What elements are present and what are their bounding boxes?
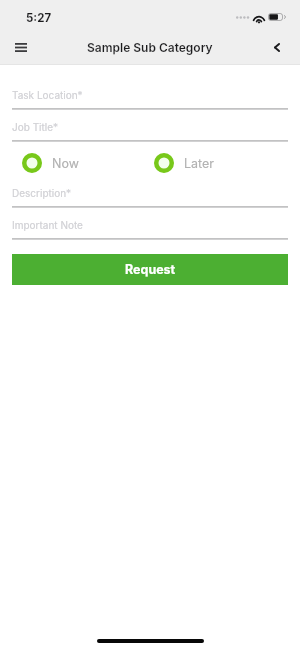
button[interactable]: Request xyxy=(12,254,288,285)
button[interactable]: Now xyxy=(22,150,79,176)
staticText: Now xyxy=(52,156,79,171)
staticText: Description* xyxy=(12,187,72,199)
staticText: Important Note xyxy=(12,219,83,231)
staticText: 5:27 xyxy=(26,11,52,25)
button[interactable]: Back xyxy=(263,30,291,65)
staticText: Task Location* xyxy=(12,89,83,101)
staticText: Sample Sub Category xyxy=(87,40,213,55)
button[interactable]: Menu xyxy=(5,30,36,65)
staticText: Request xyxy=(125,262,176,277)
staticText: Later xyxy=(184,156,215,171)
button[interactable]: Later xyxy=(154,150,215,176)
staticText: Job Title* xyxy=(12,121,59,133)
